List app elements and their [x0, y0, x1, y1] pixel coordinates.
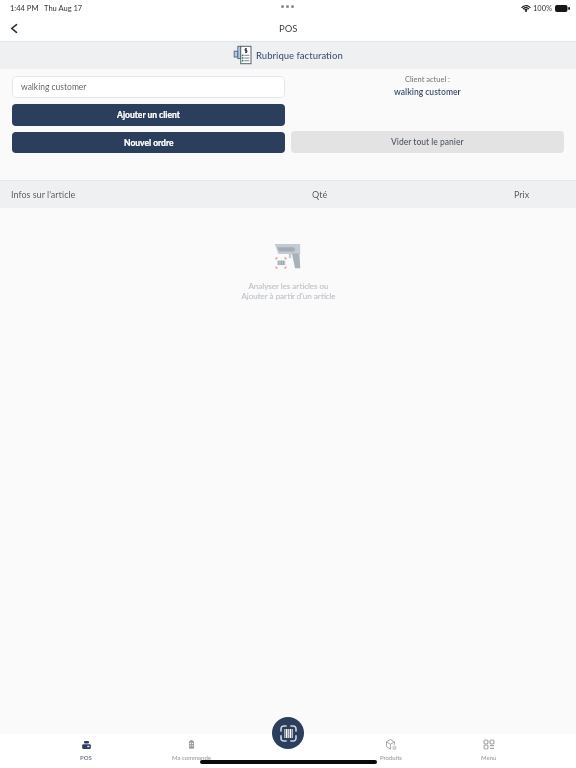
staticText: Infos sur l'article	[11, 189, 76, 200]
button[interactable]: Ajouter un client	[12, 104, 285, 126]
staticText: Nouvel ordre	[124, 138, 174, 148]
staticText: walking customer	[394, 87, 461, 97]
button[interactable]: Produits	[356, 734, 426, 768]
button[interactable]: Scan barcode	[272, 717, 304, 749]
staticText: 1:44 PM	[10, 4, 39, 13]
button[interactable]: Rubrique facturation	[230, 44, 347, 66]
staticText: Menu	[481, 754, 497, 761]
button[interactable]: Menu	[454, 734, 524, 768]
staticText: 100%	[533, 4, 553, 13]
staticText: Ma commande	[172, 754, 211, 761]
staticText: walking customer	[21, 82, 87, 92]
button[interactable]: Ma commande	[156, 734, 226, 768]
staticText: Rubrique facturation	[256, 50, 343, 61]
staticText: Thu Aug 17	[44, 4, 83, 13]
button[interactable]: walking customer	[12, 76, 285, 98]
button[interactable]: Vider tout le panier	[291, 131, 564, 153]
staticText: Produits	[380, 754, 402, 761]
button[interactable]: POS	[51, 734, 121, 768]
staticText: Ajouter un client	[117, 110, 180, 120]
staticText: Qté	[312, 189, 328, 200]
staticText: Client actuel :	[405, 75, 450, 84]
staticText: Prix	[514, 189, 530, 200]
button[interactable]: Nouvel ordre	[12, 132, 285, 153]
staticText: Vider tout le panier	[391, 137, 464, 147]
staticText: Analyser les articles ou	[248, 281, 329, 291]
staticText: POS	[80, 754, 92, 761]
button[interactable]: Back	[2, 17, 26, 41]
staticText: POS	[279, 23, 298, 34]
staticText: Ajouter à partir d'un article	[241, 291, 336, 301]
